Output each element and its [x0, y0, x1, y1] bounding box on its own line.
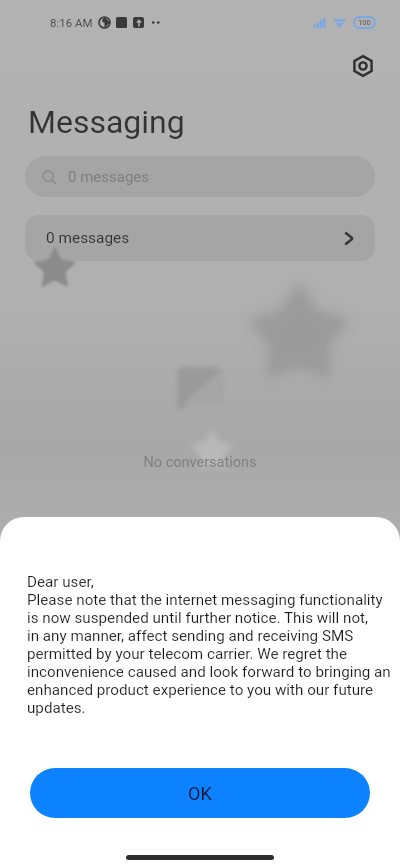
staticText: 8:16 AM [50, 16, 93, 29]
button[interactable]: 0 messages [25, 215, 375, 261]
button[interactable]: 0 messages [25, 156, 375, 197]
staticText: No conversations [0, 454, 400, 471]
button[interactable]: Settings [345, 48, 381, 84]
staticText: 0 messages [46, 229, 130, 247]
staticText: 100 [358, 18, 371, 27]
button[interactable]: OK [30, 768, 370, 818]
staticText: Messaging [28, 103, 185, 141]
staticText: OK [188, 783, 212, 804]
staticText: 0 messages [68, 168, 150, 186]
staticText: Dear user, Please note that the internet… [27, 573, 393, 717]
